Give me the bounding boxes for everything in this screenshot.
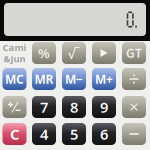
button[interactable]: Plus minus	[2, 96, 26, 118]
button[interactable]: Subtract	[122, 123, 146, 145]
staticText: MR	[34, 71, 53, 87]
button[interactable]: 4	[32, 123, 56, 145]
staticText: Cami	[2, 41, 26, 53]
button[interactable]: Memory plus	[92, 68, 116, 90]
staticText: C	[10, 124, 19, 144]
button[interactable]: 9	[92, 96, 116, 118]
button[interactable]: Divide	[122, 68, 146, 90]
button[interactable]: 5	[62, 123, 86, 145]
button[interactable]: 6	[92, 123, 116, 145]
staticText: M+	[95, 71, 113, 87]
button[interactable]: Clear	[2, 123, 26, 145]
staticText: 8	[70, 97, 78, 117]
button[interactable]: Multiply	[122, 96, 146, 118]
staticText: 9	[100, 97, 108, 117]
button[interactable]: Grand total	[122, 42, 146, 64]
button[interactable]: Memory minus	[62, 68, 86, 90]
staticText: 7	[40, 97, 48, 117]
button[interactable]: Play	[92, 42, 116, 64]
staticText: 5	[70, 124, 78, 144]
staticText: MC	[5, 71, 24, 87]
button[interactable]: Percent	[32, 42, 56, 64]
staticText: GT	[126, 45, 142, 61]
staticText: %	[38, 44, 50, 62]
staticText: 4	[40, 124, 48, 144]
button[interactable]: Memory clear	[2, 68, 26, 90]
button[interactable]: 7	[32, 96, 56, 118]
staticText: 6	[100, 124, 108, 144]
staticText: M−	[65, 71, 83, 87]
button[interactable]: Memory recall	[32, 68, 56, 90]
staticText: &Jun	[3, 52, 25, 65]
button[interactable]: Square root	[62, 42, 86, 64]
button[interactable]: 8	[62, 96, 86, 118]
